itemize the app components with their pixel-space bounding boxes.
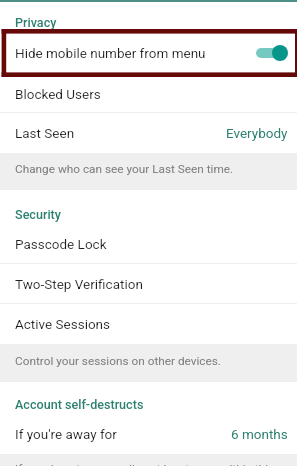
staticText: Active Sessions [15, 316, 111, 332]
button[interactable]: Active Sessions [0, 304, 297, 344]
button[interactable]: Hide mobile number from menu [0, 29, 297, 77]
button[interactable]: Two-Step Verification [0, 264, 297, 304]
staticText: Control your sessions on other devices. [15, 354, 221, 368]
staticText: 6 months [231, 426, 288, 442]
button[interactable]: If you're away for [0, 414, 297, 454]
staticText: Privacy [15, 15, 57, 30]
staticText: If you're away for [15, 426, 117, 442]
staticText: Hide mobile number from menu [15, 45, 206, 61]
staticText: Passcode Lock [15, 236, 107, 252]
button[interactable]: Blocked Users [0, 75, 297, 113]
staticText: Blocked Users [15, 86, 101, 102]
staticText: Change who can see your Last Seen time. [15, 162, 234, 176]
staticText: Everybody [226, 125, 288, 141]
button[interactable]: Passcode Lock [0, 224, 297, 264]
staticText: Two-Step Verification [15, 276, 143, 292]
button[interactable]: Last Seen [0, 113, 297, 153]
button[interactable]: Hide mobile number toggle [256, 45, 288, 61]
staticText: Security [15, 207, 61, 222]
staticText: Last Seen [15, 125, 75, 141]
staticText: Account self-destructs [15, 397, 144, 412]
staticText: If you do not come online at least once … [15, 462, 297, 466]
